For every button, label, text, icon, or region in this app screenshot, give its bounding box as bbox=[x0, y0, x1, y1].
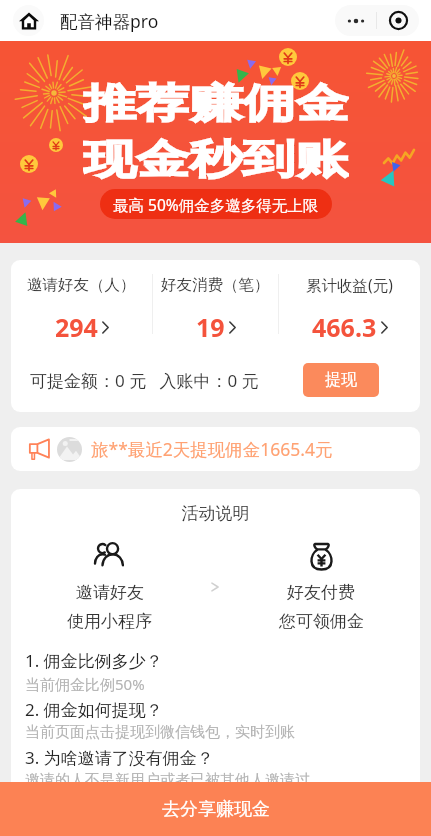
staticText: 累计收益(元) bbox=[306, 274, 393, 295]
staticText: 邀请好友（人） bbox=[27, 275, 136, 295]
staticText: 最高 50%佣金多邀多得无上限 bbox=[113, 194, 319, 215]
button[interactable]: 邀请好友（人） bbox=[11, 260, 152, 348]
staticText: 去分享赚现金 bbox=[162, 798, 270, 821]
staticText: 当前佣金比例50% bbox=[25, 674, 145, 694]
staticText: 现金秒到账 bbox=[83, 134, 349, 182]
staticText: 好友消费（笔） bbox=[161, 275, 270, 295]
button[interactable]: 累计收益(元) bbox=[279, 260, 420, 348]
staticText: 19 bbox=[196, 310, 225, 344]
staticText: 2. 佣金如何提现？ bbox=[25, 698, 163, 721]
button[interactable]: Close bbox=[377, 5, 419, 36]
staticText: 1. 佣金比例多少？ bbox=[25, 649, 163, 672]
staticText: 活动说明 bbox=[11, 503, 420, 524]
staticText: 好友付费 bbox=[287, 582, 355, 603]
staticText: 您可领佣金 bbox=[279, 611, 364, 632]
staticText: 294 bbox=[55, 310, 98, 344]
staticText: 使用小程序 bbox=[67, 611, 152, 632]
button[interactable]: 提现 bbox=[303, 363, 379, 397]
staticText: 3. 为啥邀请了没有佣金？ bbox=[25, 746, 214, 769]
button[interactable]: 去分享赚现金 bbox=[0, 782, 431, 836]
staticText: 当前页面点击提现到微信钱包，实时到账 bbox=[25, 723, 295, 742]
staticText: 可提金额：0 元 入账中：0 元 bbox=[30, 369, 259, 392]
button[interactable]: Home bbox=[13, 5, 44, 36]
button[interactable]: 最高 50%佣金多邀多得无上限 bbox=[113, 189, 319, 219]
staticText: 推荐赚佣金 bbox=[83, 78, 349, 126]
staticText: 配音神器pro bbox=[60, 9, 159, 33]
staticText: 邀请好友 bbox=[76, 582, 144, 603]
button[interactable]: 旅**最近2天提现佣金1665.4元 bbox=[11, 427, 420, 471]
staticText: 旅**最近2天提现佣金1665.4元 bbox=[91, 437, 333, 461]
staticText: 邀请的人不是新用户或者已被其他人邀请过 bbox=[25, 771, 310, 790]
staticText: 466.3 bbox=[312, 310, 377, 344]
button[interactable]: More options bbox=[335, 5, 376, 36]
button[interactable]: 好友消费（笔） bbox=[153, 260, 278, 348]
staticText: 提现 bbox=[325, 370, 357, 390]
